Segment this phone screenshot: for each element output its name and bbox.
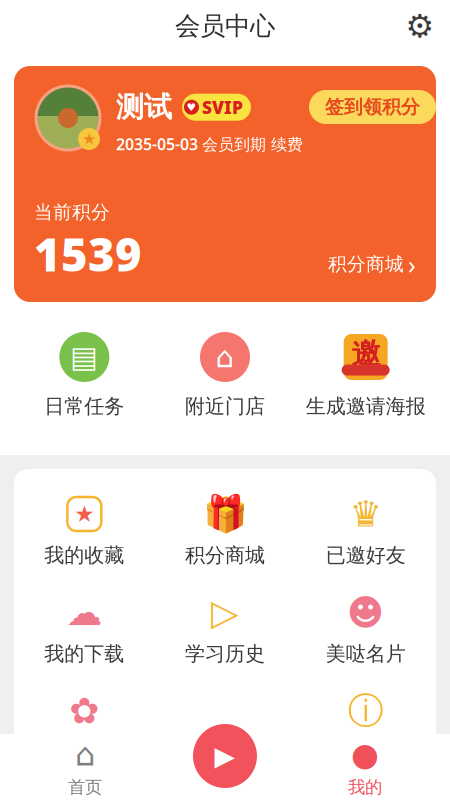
staticText: 附近门店 (185, 394, 265, 419)
staticText: 首页 (68, 776, 102, 798)
button[interactable]: ⓘ (295, 692, 436, 767)
staticText: 学习历史 (185, 642, 265, 666)
staticText: ★ (74, 501, 94, 527)
button[interactable]: ⌂ (0, 736, 170, 798)
staticText: SVIP (202, 96, 243, 119)
staticText: ⌂ (215, 340, 234, 374)
button[interactable]: ☻ (295, 594, 436, 666)
staticText: 我的 (348, 776, 382, 798)
staticText: ▷ (211, 592, 239, 633)
button[interactable]: ♛ (295, 495, 436, 568)
staticText: 日常任务 (44, 394, 124, 419)
staticText: ✿ (69, 691, 99, 732)
staticText: 2035-05-03 会员到期 续费 (116, 133, 303, 155)
button[interactable]: ● (280, 736, 450, 798)
staticText: ♥ (186, 101, 196, 113)
staticText: ★ (82, 130, 96, 148)
button[interactable] (155, 692, 295, 767)
staticText: 我的收藏 (44, 543, 124, 568)
button[interactable]: 积分商城 (328, 247, 416, 281)
button[interactable]: 邀 (295, 332, 436, 419)
staticText: 测试 (116, 90, 172, 124)
staticText: 会员中心 (175, 10, 275, 41)
staticText: › (408, 247, 416, 281)
button[interactable]: ⌂ (155, 332, 295, 419)
staticText: 邀 (351, 336, 380, 372)
button[interactable]: ✿ (14, 692, 155, 767)
staticText: ⌂ (75, 736, 95, 772)
button[interactable]: ☁ (14, 594, 155, 666)
staticText: ⚙ (405, 8, 434, 44)
staticText: ▤ (70, 340, 98, 374)
staticText: 积分商城 (328, 253, 404, 276)
staticText: 🎁 (202, 493, 247, 534)
button[interactable]: Settings (398, 4, 442, 48)
button[interactable]: Play (186, 717, 264, 795)
staticText: 我的下载 (44, 642, 124, 666)
staticText: ☁ (66, 592, 102, 633)
staticText: 当前积分 (34, 201, 110, 224)
button[interactable]: ▷ (155, 594, 295, 666)
staticText: ● (351, 736, 379, 772)
staticText: 已邀好友 (326, 543, 406, 568)
staticText: 积分商城 (185, 543, 265, 568)
staticText: ☻ (347, 592, 385, 633)
staticText: 签到领积分 (325, 95, 420, 118)
button[interactable]: ★ (14, 495, 155, 568)
staticText: 1539 (34, 224, 142, 284)
button[interactable]: ▤ (14, 332, 155, 419)
staticText: ▶ (214, 741, 235, 771)
staticText: ⓘ (348, 689, 384, 733)
button[interactable]: 🎁 (155, 495, 295, 568)
staticText: 美哒名片 (326, 642, 406, 666)
button[interactable]: 签到领积分 (309, 90, 416, 124)
staticText: ♛ (350, 494, 382, 534)
staticText: 生成邀请海报 (306, 394, 426, 419)
